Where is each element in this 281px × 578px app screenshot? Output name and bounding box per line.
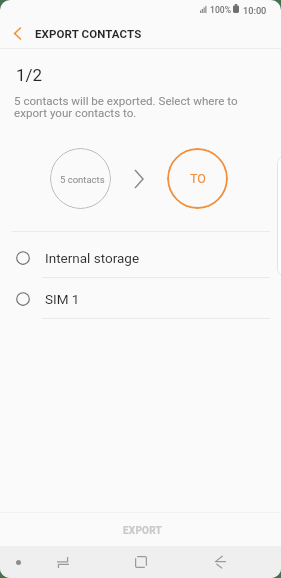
button[interactable]: EXPORT	[0, 512, 281, 546]
staticText: 10:00	[243, 5, 267, 16]
button[interactable]: Back	[0, 19, 35, 48]
staticText: 100%	[210, 5, 231, 15]
staticText: SIM 1	[45, 291, 80, 307]
button[interactable]: Internal storage	[0, 237, 281, 278]
button[interactable]: Back	[201, 546, 239, 578]
staticText: 5 contacts will be exported. Select wher…	[14, 94, 238, 119]
staticText: TO	[190, 171, 206, 186]
button[interactable]: Recents	[44, 546, 82, 578]
staticText: Internal storage	[45, 250, 140, 266]
button[interactable]: 5 contacts	[50, 148, 111, 209]
button[interactable]: Home	[122, 546, 160, 578]
button[interactable]: TO	[167, 148, 228, 209]
staticText: EXPORT CONTACTS	[35, 27, 142, 40]
staticText: 5 contacts	[60, 174, 105, 185]
staticText: 1/2	[16, 65, 43, 85]
staticText: EXPORT	[123, 525, 162, 537]
button[interactable]: SIM 1	[0, 278, 281, 319]
